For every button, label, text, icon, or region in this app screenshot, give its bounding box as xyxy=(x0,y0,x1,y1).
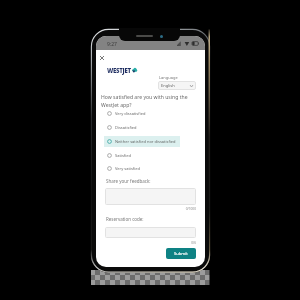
staticText: Reservation code: xyxy=(106,216,144,222)
staticText: 9:27 xyxy=(107,41,117,48)
staticText: 0/1000 xyxy=(105,207,196,211)
button[interactable]: Neither satisfied nor dissatisfied xyxy=(104,136,180,147)
button[interactable]: Dissatisfied xyxy=(104,122,180,133)
staticText: 0/6 xyxy=(105,241,196,245)
staticText: How satisfied are you with using the Wes… xyxy=(101,94,193,108)
button[interactable]: Submit xyxy=(166,248,196,259)
button[interactable]: Satisfied xyxy=(104,150,180,161)
staticText: Language xyxy=(159,75,178,80)
staticText: WESTJET xyxy=(107,66,131,74)
button[interactable]: Close xyxy=(97,53,106,62)
button[interactable]: Very dissatisfied xyxy=(104,108,180,119)
staticText: English xyxy=(161,83,175,88)
staticText: Dissatisfied xyxy=(115,125,137,130)
button[interactable] xyxy=(105,188,196,205)
staticText: Satisfied xyxy=(115,153,131,158)
staticText: Very satisfied xyxy=(115,166,140,171)
staticText: Share your feedback: xyxy=(106,178,151,184)
staticText: Submit xyxy=(174,251,188,257)
staticText: Neither satisfied nor dissatisfied xyxy=(115,139,176,144)
button[interactable]: Very satisfied xyxy=(104,163,180,174)
button[interactable] xyxy=(105,227,196,238)
staticText: Very dissatisfied xyxy=(115,111,146,116)
button[interactable]: English xyxy=(158,81,196,90)
